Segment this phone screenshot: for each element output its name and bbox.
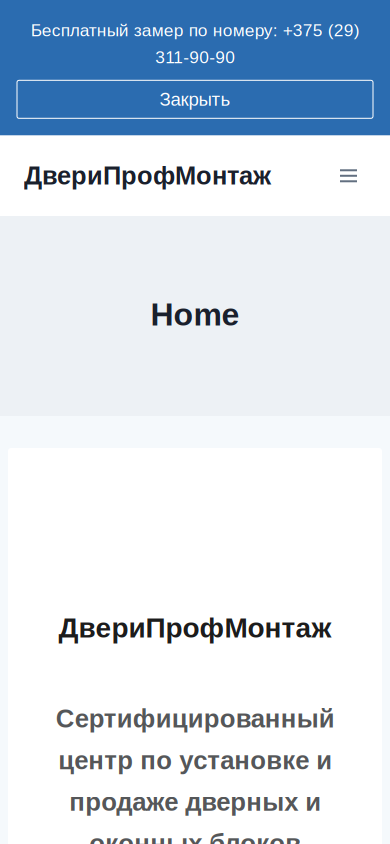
staticText: Закрыть bbox=[159, 89, 230, 110]
staticText: Сертифицированный центр по установке и п… bbox=[55, 704, 334, 844]
button[interactable]: ДвериПрофМонтаж bbox=[24, 162, 271, 190]
staticText: ДвериПрофМонтаж bbox=[24, 162, 271, 190]
staticText: Бесплатный замер по номеру: +375 (29) 31… bbox=[30, 20, 359, 67]
button[interactable]: Open menu bbox=[332, 161, 365, 190]
staticText: Home bbox=[150, 297, 239, 332]
button[interactable]: Закрыть bbox=[17, 80, 373, 118]
staticText: ДвериПрофМонтаж bbox=[58, 612, 331, 643]
